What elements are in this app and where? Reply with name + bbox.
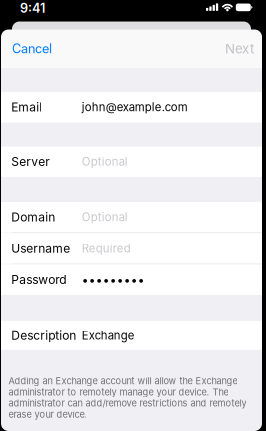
staticText: Next (225, 41, 254, 57)
staticText: Password (11, 272, 66, 287)
button[interactable]: Username (1, 233, 262, 264)
button[interactable]: Description (1, 321, 262, 350)
staticText: Cancel (12, 41, 52, 56)
staticText: Adding an Exchange account will allow th… (8, 375, 246, 420)
staticText: ••••••••• (82, 272, 145, 287)
button[interactable]: Domain (1, 202, 262, 232)
staticText: Exchange (82, 328, 135, 342)
button[interactable]: Cancel (1, 29, 62, 68)
staticText: Server (11, 154, 50, 169)
staticText: Domain (11, 210, 55, 224)
button[interactable]: Next (215, 29, 262, 68)
staticText: 9:41 (20, 0, 45, 16)
button[interactable]: Email (1, 92, 262, 122)
staticText: Email (11, 100, 42, 114)
button[interactable]: Server (1, 146, 262, 177)
staticText: Username (11, 241, 70, 256)
staticText: john@example.com (82, 100, 188, 114)
staticText: Optional (82, 155, 128, 169)
staticText: Description (11, 328, 76, 343)
staticText: Optional (82, 210, 128, 224)
staticText: Required (82, 242, 131, 255)
button[interactable]: Password (1, 264, 262, 295)
